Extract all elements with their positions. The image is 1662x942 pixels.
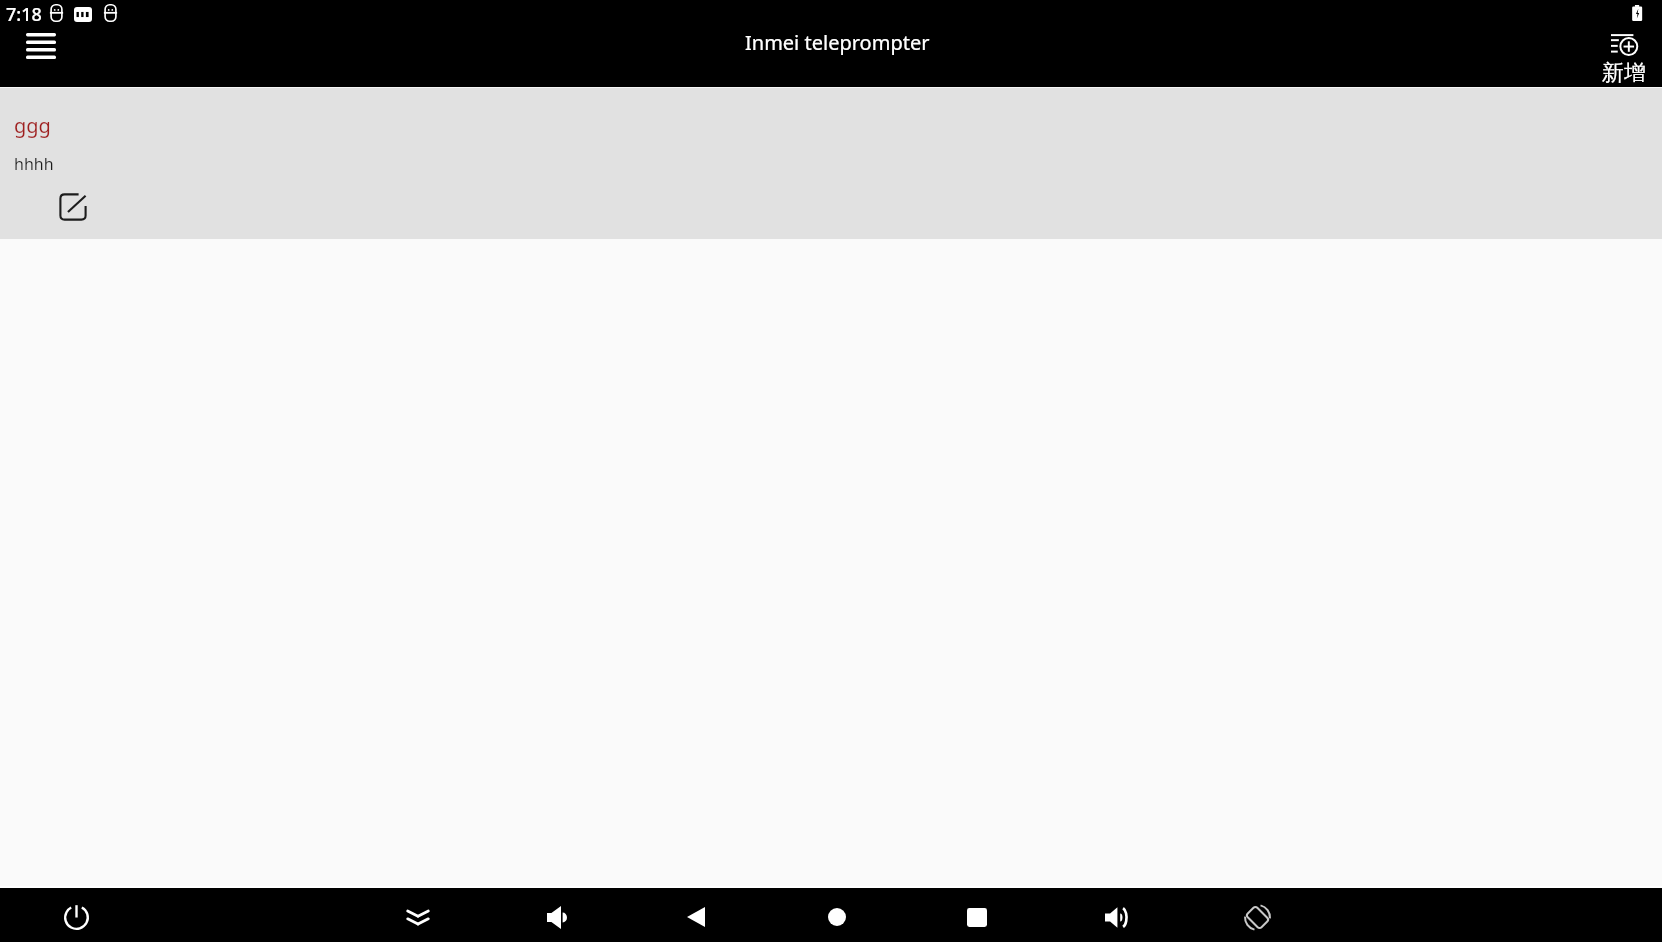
- button[interactable]: New script: [1578, 0, 1662, 87]
- button[interactable]: Rotate screen: [1223, 888, 1291, 942]
- staticText: 新增: [1602, 59, 1646, 87]
- button[interactable]: Power: [42, 888, 110, 942]
- button[interactable]: Menu: [6, 22, 76, 70]
- button[interactable]: ggg: [0, 88, 1662, 239]
- staticText: ggg: [14, 112, 51, 139]
- button[interactable]: Rewind: [662, 888, 730, 942]
- button[interactable]: Volume down: [523, 888, 591, 942]
- button[interactable]: Scroll down: [384, 888, 452, 942]
- staticText: Inmei teleprompter: [745, 29, 930, 56]
- button[interactable]: Volume up: [1082, 888, 1150, 942]
- staticText: 7:18: [6, 2, 42, 27]
- staticText: hhhh: [14, 153, 54, 175]
- button[interactable]: Record: [803, 888, 871, 942]
- button[interactable]: Stop: [943, 888, 1011, 942]
- button[interactable]: Edit: [52, 186, 94, 228]
